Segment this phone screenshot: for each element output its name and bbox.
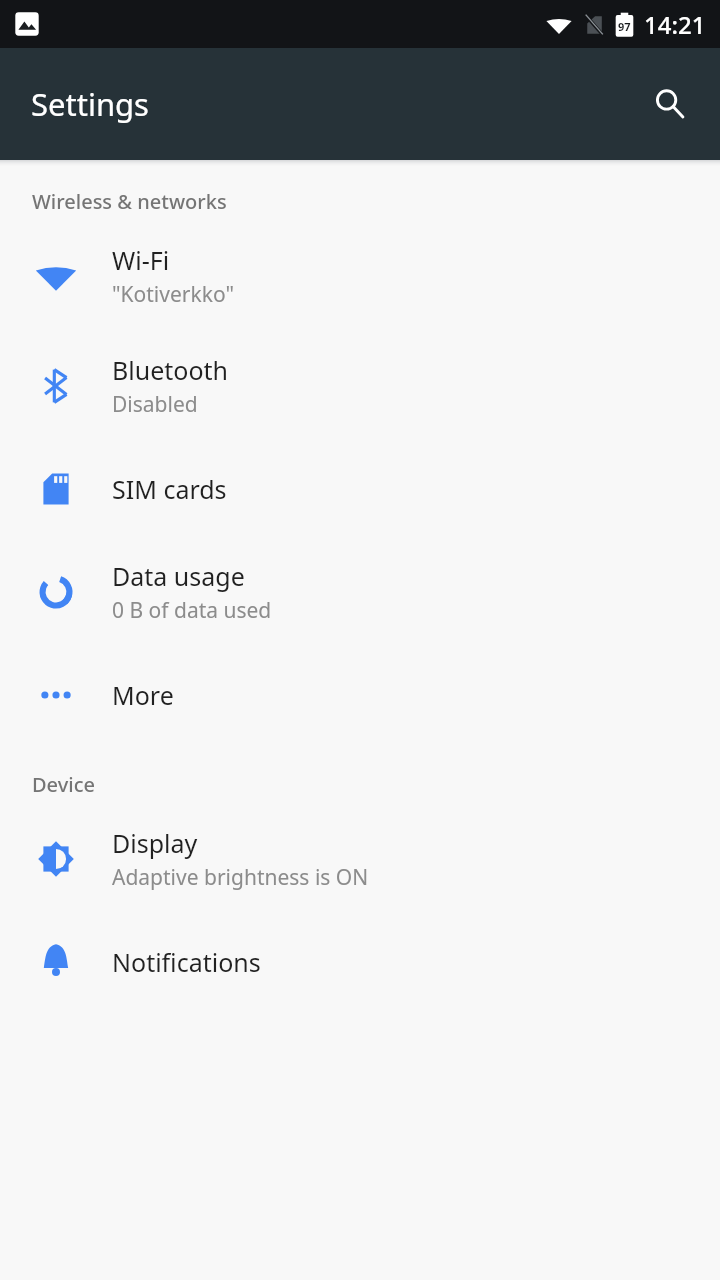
staticText: SIM cards xyxy=(112,472,227,506)
staticText: Device xyxy=(32,771,95,798)
button[interactable]: Wi-Fi xyxy=(0,221,720,331)
button[interactable]: Search xyxy=(642,76,698,132)
staticText: Bluetooth xyxy=(112,353,229,387)
staticText: "Kotiverkko" xyxy=(112,280,234,309)
button[interactable]: SIM cards xyxy=(0,441,720,537)
staticText: Wi-Fi xyxy=(112,243,170,277)
staticText: Display xyxy=(112,826,198,860)
button[interactable]: Data usage xyxy=(0,537,720,647)
staticText: 97 xyxy=(618,19,631,34)
button[interactable]: More xyxy=(0,647,720,743)
button[interactable]: Notifications xyxy=(0,914,720,1010)
staticText: Adaptive brightness is ON xyxy=(112,863,369,892)
button[interactable]: Display xyxy=(0,804,720,914)
staticText: More xyxy=(112,678,174,712)
staticText: Data usage xyxy=(112,559,245,593)
staticText: Notifications xyxy=(112,945,261,979)
button[interactable]: Bluetooth xyxy=(0,331,720,441)
staticText: 14:21 xyxy=(644,8,706,41)
staticText: Settings xyxy=(31,83,149,125)
staticText: 0 B of data used xyxy=(112,596,272,625)
staticText: Wireless & networks xyxy=(32,188,227,215)
staticText: Disabled xyxy=(112,390,198,419)
